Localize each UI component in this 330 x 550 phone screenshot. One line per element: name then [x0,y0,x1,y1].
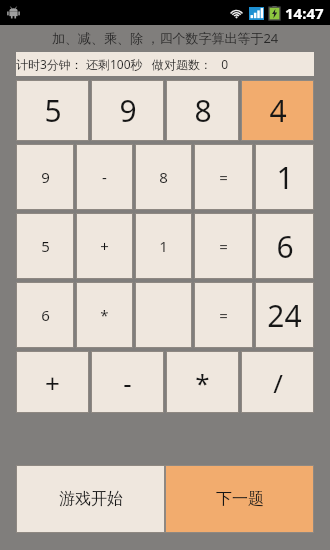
staticText: 1 [276,157,294,198]
button[interactable]: 8 [136,145,191,209]
button[interactable]: * [77,283,132,347]
staticText: 下一题 [216,489,264,509]
button[interactable]: = [195,214,252,278]
staticText: * [195,365,210,400]
staticText: - [102,167,107,187]
staticText: 游戏开始 [59,489,123,509]
button[interactable]: 5 [17,81,88,140]
staticText: = [219,305,228,325]
button[interactable]: 4 [242,81,313,140]
staticText: 9 [119,90,137,131]
staticText: 加、减、乘、除 ，四个数字算出等于24 [52,29,279,47]
staticText: - [123,365,132,400]
staticText: 9 [41,167,50,187]
button[interactable]: = [195,283,252,347]
staticText: * [100,305,109,325]
button[interactable]: + [77,214,132,278]
button[interactable]: 8 [167,81,238,140]
staticText: 计时3分钟： 还剩100秒 做对题数： 0 [16,56,229,72]
staticText: 6 [41,305,50,325]
button[interactable]: 24 [256,283,313,347]
button[interactable]: 1 [256,145,313,209]
button[interactable]: 5 [17,214,73,278]
staticText: 8 [159,167,168,187]
button[interactable]: 6 [17,283,73,347]
staticText: 8 [194,90,212,131]
staticText: + [100,236,109,256]
staticText: 1 [159,236,168,256]
staticText: 5 [41,236,50,256]
staticText: = [219,236,228,256]
staticText: 5 [44,90,62,131]
button[interactable]: - [92,352,163,412]
button[interactable]: * [167,352,238,412]
staticText: / [273,365,283,400]
button[interactable]: 游戏开始 [17,466,164,532]
staticText: + [45,365,60,400]
button[interactable]: = [195,145,252,209]
button[interactable]: / [242,352,313,412]
button[interactable]: - [77,145,132,209]
staticText: 24 [267,295,302,336]
button[interactable]: + [17,352,88,412]
staticText: 4 [269,90,287,131]
staticText: = [219,167,228,187]
button[interactable]: 1 [136,214,191,278]
staticText: 6 [276,226,294,267]
button[interactable]: 下一题 [166,466,313,532]
button[interactable]: 6 [256,214,313,278]
staticText: 14:47 [285,3,324,23]
button[interactable]: 9 [17,145,73,209]
button[interactable]: 9 [92,81,163,140]
